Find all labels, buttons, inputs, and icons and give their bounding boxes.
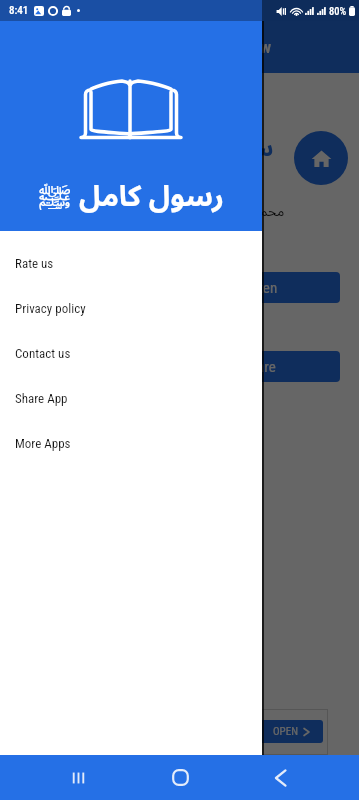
button[interactable]: More Apps — [0, 421, 262, 466]
staticText: Rate us — [15, 256, 54, 271]
staticText: محمد رسول الله صلى الله عليه وسلم — [83, 197, 285, 227]
staticText: 80% — [329, 5, 347, 17]
button[interactable]: Recents — [55, 755, 101, 800]
staticText: Listen — [241, 279, 278, 297]
button[interactable]: Contact us — [0, 331, 262, 376]
staticText: Prophet Muhammad View — [98, 37, 272, 57]
button[interactable]: Share App — [0, 376, 262, 421]
staticText: Contact us — [15, 346, 71, 361]
staticText: 8:41 — [9, 4, 29, 17]
staticText: سیرت النبی — [153, 124, 274, 173]
staticText: Share App — [15, 391, 68, 406]
staticText: Privacy policy — [15, 301, 86, 316]
button[interactable]: Rate us — [0, 241, 262, 286]
button[interactable]: Privacy policy — [0, 286, 262, 331]
button[interactable]: Home — [294, 131, 348, 185]
button[interactable]: OPEN — [241, 720, 323, 743]
button[interactable]: Listen — [19, 272, 340, 303]
button[interactable]: Share — [19, 351, 340, 382]
button[interactable]: Home — [157, 755, 203, 800]
staticText: Share — [242, 358, 276, 376]
button[interactable]: Back — [258, 755, 304, 800]
staticText: رسول كامل ﷺ — [38, 166, 224, 227]
staticText: More Apps — [15, 436, 71, 451]
staticText: OPEN — [273, 725, 298, 738]
